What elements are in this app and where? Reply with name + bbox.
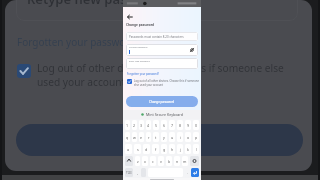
button[interactable]: w <box>132 132 137 142</box>
staticText: p <box>195 135 198 140</box>
staticText: 9 <box>187 123 190 128</box>
button[interactable]: Log out of all other devices. Choose thi… <box>127 79 199 87</box>
button[interactable]: Backspace <box>190 156 199 166</box>
staticText: q <box>126 135 129 140</box>
staticText: 6 <box>163 123 166 128</box>
staticText: s <box>137 147 139 152</box>
button[interactable]: 9 <box>185 120 191 130</box>
button[interactable]: z <box>135 156 140 166</box>
button[interactable]: f <box>152 144 159 154</box>
button[interactable]: 3 <box>139 120 144 130</box>
staticText: Passwords must contain 8-20 characters <box>129 35 184 39</box>
staticText: Change password <box>149 100 175 104</box>
staticText: used your account <box>37 75 126 89</box>
other: Show password <box>189 47 195 53</box>
button[interactable]: x <box>142 156 148 166</box>
staticText: i <box>180 135 181 140</box>
staticText: 4 <box>147 123 150 128</box>
button[interactable]: Forgotten your password? <box>17 35 140 49</box>
staticText: b <box>168 159 171 164</box>
button[interactable]: Forgotten your password? <box>127 72 159 76</box>
staticText: Retype new password <box>27 0 166 8</box>
staticText: 7 <box>171 123 174 128</box>
button[interactable]: Back <box>126 13 134 21</box>
staticText: . <box>187 170 188 175</box>
button[interactable]: 6 <box>161 120 167 130</box>
staticText: t <box>155 135 157 140</box>
staticText: z <box>137 159 139 164</box>
button[interactable]: r <box>146 132 151 142</box>
staticText: r <box>148 135 150 140</box>
button[interactable]: b <box>166 156 172 166</box>
button[interactable]: 2 <box>132 120 137 130</box>
button[interactable]: 1 <box>125 120 130 130</box>
staticText: , <box>137 170 138 175</box>
staticText: 2 <box>133 123 136 128</box>
button[interactable]: Enter <box>191 168 199 177</box>
button[interactable]: , <box>135 168 139 177</box>
staticText: Log out of all other devices. Choose thi… <box>134 79 199 87</box>
button[interactable]: e <box>139 132 144 142</box>
button[interactable]: v <box>158 156 164 166</box>
button[interactable]: a <box>125 144 132 154</box>
staticText: 0 <box>195 123 198 128</box>
staticText: y <box>163 135 165 140</box>
staticText: k <box>187 147 189 152</box>
staticText: 8 <box>179 123 182 128</box>
staticText: Log out of other devices. Select this if… <box>37 61 284 75</box>
button[interactable]: s <box>134 144 141 154</box>
button[interactable]: l <box>193 144 199 154</box>
button[interactable]: m <box>182 156 188 166</box>
button[interactable]: Change password <box>126 96 198 107</box>
staticText: ?123 <box>126 171 132 175</box>
button[interactable]: Shift <box>125 156 133 166</box>
staticText: Mint Secure Keyboard <box>146 112 183 117</box>
staticText: l <box>196 147 197 152</box>
button[interactable]: t <box>153 132 159 142</box>
button[interactable]: ?123 <box>125 168 133 177</box>
staticText: n <box>176 159 179 164</box>
staticText: v <box>160 159 162 164</box>
staticText: Change password <box>126 23 155 27</box>
staticText: o <box>187 135 190 140</box>
staticText: h <box>171 147 174 152</box>
button[interactable]: 8 <box>177 120 183 130</box>
button[interactable]: p <box>193 132 199 142</box>
button[interactable]: 4 <box>146 120 151 130</box>
staticText: u <box>171 135 174 140</box>
staticText: x <box>144 159 146 164</box>
staticText: Enter new password <box>129 60 150 63</box>
button[interactable]: c <box>150 156 156 166</box>
staticText: 5 <box>155 123 158 128</box>
button[interactable]: 5 <box>153 120 159 130</box>
button[interactable]: h <box>169 144 175 154</box>
button[interactable]: k <box>185 144 191 154</box>
button[interactable]: o <box>185 132 191 142</box>
button[interactable] <box>16 124 303 156</box>
button[interactable]: y <box>161 132 167 142</box>
button[interactable]: u <box>169 132 175 142</box>
button[interactable]: 0 <box>193 120 199 130</box>
button[interactable]: d <box>143 144 150 154</box>
button[interactable]: n <box>174 156 180 166</box>
button[interactable]: Log out of other devices. Select this if… <box>17 64 284 92</box>
staticText: j <box>180 147 181 152</box>
button[interactable]: Retype new password <box>16 0 298 21</box>
button[interactable]: j <box>177 144 183 154</box>
staticText: 1 <box>126 123 129 128</box>
button[interactable]: Enter new password <box>126 58 198 69</box>
button[interactable]: Current password <box>126 44 198 56</box>
staticText: a <box>127 147 130 152</box>
button[interactable]: q <box>125 132 130 142</box>
staticText: c <box>152 159 154 164</box>
staticText: 3 <box>140 123 143 128</box>
staticText: d <box>145 147 148 152</box>
button[interactable]: . <box>185 168 189 177</box>
button[interactable]: i <box>177 132 183 142</box>
button[interactable]: g <box>161 144 167 154</box>
button[interactable]: 7 <box>169 120 175 130</box>
staticText: e <box>140 135 143 140</box>
staticText: w <box>133 135 136 140</box>
